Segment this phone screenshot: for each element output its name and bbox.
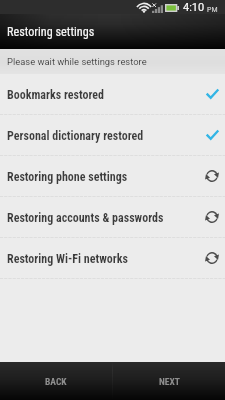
staticText: 4:10 bbox=[183, 1, 205, 14]
staticText: Restoring settings bbox=[7, 25, 95, 39]
other: Completed bbox=[205, 128, 219, 142]
staticText: Restoring Wi-Fi networks bbox=[7, 252, 128, 266]
button[interactable]: Restoring accounts & passwords bbox=[0, 197, 225, 238]
staticText: BACK bbox=[45, 376, 67, 387]
button[interactable]: NEXT bbox=[113, 362, 225, 400]
other: Completed bbox=[205, 87, 219, 101]
staticText: Personal dictionary restored bbox=[7, 129, 144, 143]
button[interactable]: BACK bbox=[0, 362, 112, 400]
staticText: Restoring accounts & passwords bbox=[7, 211, 164, 225]
staticText: PM bbox=[207, 6, 218, 14]
staticText: Bookmarks restored bbox=[7, 88, 104, 102]
button[interactable]: Restoring phone settings bbox=[0, 156, 225, 197]
other: In progress bbox=[205, 251, 219, 265]
staticText: NEXT bbox=[159, 376, 180, 387]
staticText: Restoring phone settings bbox=[7, 170, 128, 184]
button[interactable]: Bookmarks restored bbox=[0, 74, 225, 115]
other: In progress bbox=[205, 169, 219, 183]
button[interactable]: Restoring Wi-Fi networks bbox=[0, 238, 225, 279]
button[interactable]: Personal dictionary restored bbox=[0, 115, 225, 156]
staticText: Please wait while settings restore bbox=[7, 56, 147, 67]
other: In progress bbox=[205, 210, 219, 224]
